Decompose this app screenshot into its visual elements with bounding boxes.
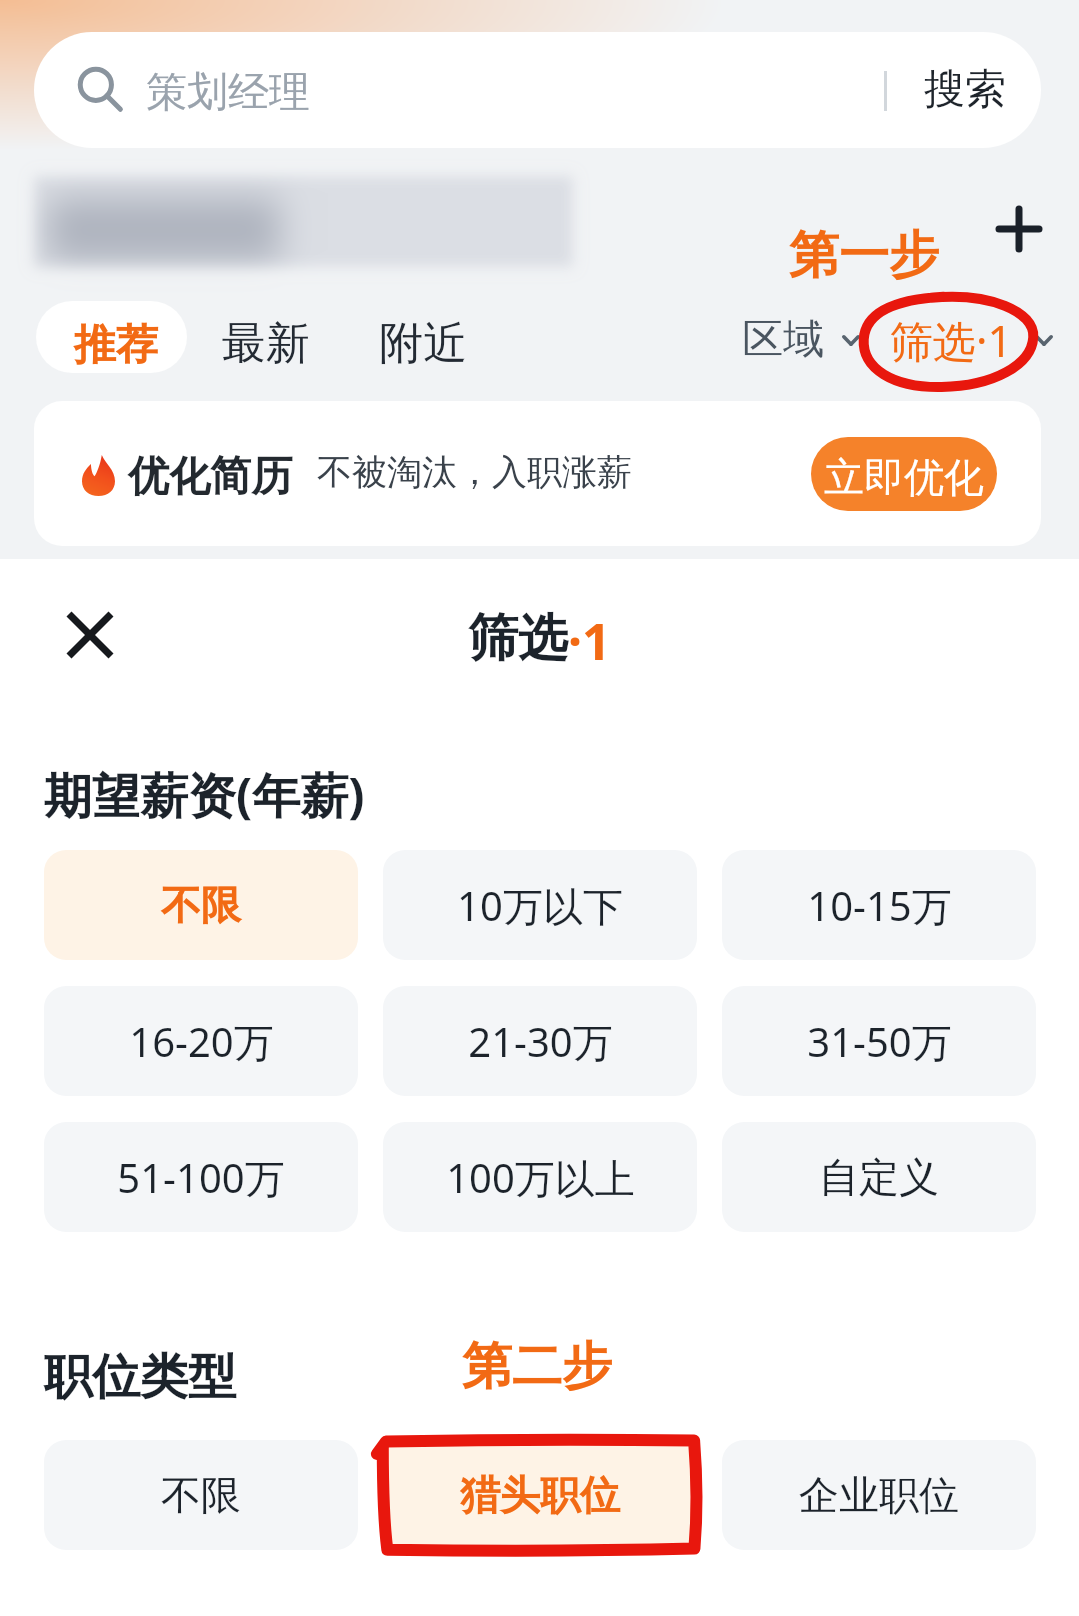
staticText: 筛选 xyxy=(468,607,568,670)
staticText: 10万以下 xyxy=(457,878,623,933)
button[interactable]: 自定义 xyxy=(722,1122,1036,1232)
staticText: 筛选·1 xyxy=(890,311,1013,370)
button[interactable]: 附近 xyxy=(379,316,467,371)
button[interactable]: 10-15万 xyxy=(722,850,1036,960)
staticText: 不限 xyxy=(161,1470,241,1520)
staticText: 不限 xyxy=(161,880,241,930)
staticText: 猎头职位 xyxy=(460,1470,620,1520)
button[interactable]: 最新 xyxy=(222,316,310,371)
button[interactable]: 10万以下 xyxy=(383,850,697,960)
button[interactable]: 16-20万 xyxy=(44,986,358,1096)
staticText: 策划经理 xyxy=(146,67,310,119)
staticText: ·1 xyxy=(568,607,611,675)
staticText: 推荐 xyxy=(74,319,158,372)
staticText: 10-15万 xyxy=(807,878,952,933)
button[interactable]: 31-50万 xyxy=(722,986,1036,1096)
button[interactable]: 区域 xyxy=(742,308,860,372)
button[interactable]: 优化简历 xyxy=(34,401,1041,546)
staticText: 第二步 xyxy=(462,1335,612,1398)
staticText: 区域 xyxy=(742,314,824,366)
staticText: 立即优化 xyxy=(824,452,984,502)
staticText: 100万以上 xyxy=(446,1150,635,1205)
button[interactable]: 企业职位 xyxy=(722,1440,1036,1550)
button[interactable]: 搜索 xyxy=(897,32,1032,148)
button[interactable]: Close xyxy=(50,595,130,675)
button[interactable]: 推荐 xyxy=(36,301,187,373)
staticText: 51-100万 xyxy=(117,1150,285,1205)
button[interactable]: 立即优化 xyxy=(811,437,997,511)
button[interactable]: Add xyxy=(987,197,1051,261)
staticText: 第一步 xyxy=(789,224,939,287)
button[interactable]: 51-100万 xyxy=(44,1122,358,1232)
staticText: 21-30万 xyxy=(468,1014,613,1069)
staticText: 不被淘汰，入职涨薪 xyxy=(317,450,632,494)
button[interactable]: 100万以上 xyxy=(383,1122,697,1232)
staticText: 31-50万 xyxy=(807,1014,952,1069)
button[interactable]: 筛选·1 xyxy=(890,308,1053,372)
staticText: 自定义 xyxy=(819,1152,939,1202)
staticText: 16-20万 xyxy=(129,1014,274,1069)
staticText: 附近 xyxy=(379,316,467,371)
staticText: 职位类型 xyxy=(44,1347,236,1407)
button[interactable]: 不限 xyxy=(44,850,358,960)
staticText: 期望薪资(年薪) xyxy=(44,762,365,828)
button[interactable]: 21-30万 xyxy=(383,986,697,1096)
button[interactable]: 策划经理 xyxy=(34,32,1041,148)
staticText: 优化简历 xyxy=(128,451,292,503)
staticText: 最新 xyxy=(222,316,310,371)
button[interactable]: 猎头职位 xyxy=(383,1440,697,1550)
staticText: 搜索 xyxy=(924,64,1006,116)
staticText: 企业职位 xyxy=(799,1470,959,1520)
button[interactable]: 不限 xyxy=(44,1440,358,1550)
